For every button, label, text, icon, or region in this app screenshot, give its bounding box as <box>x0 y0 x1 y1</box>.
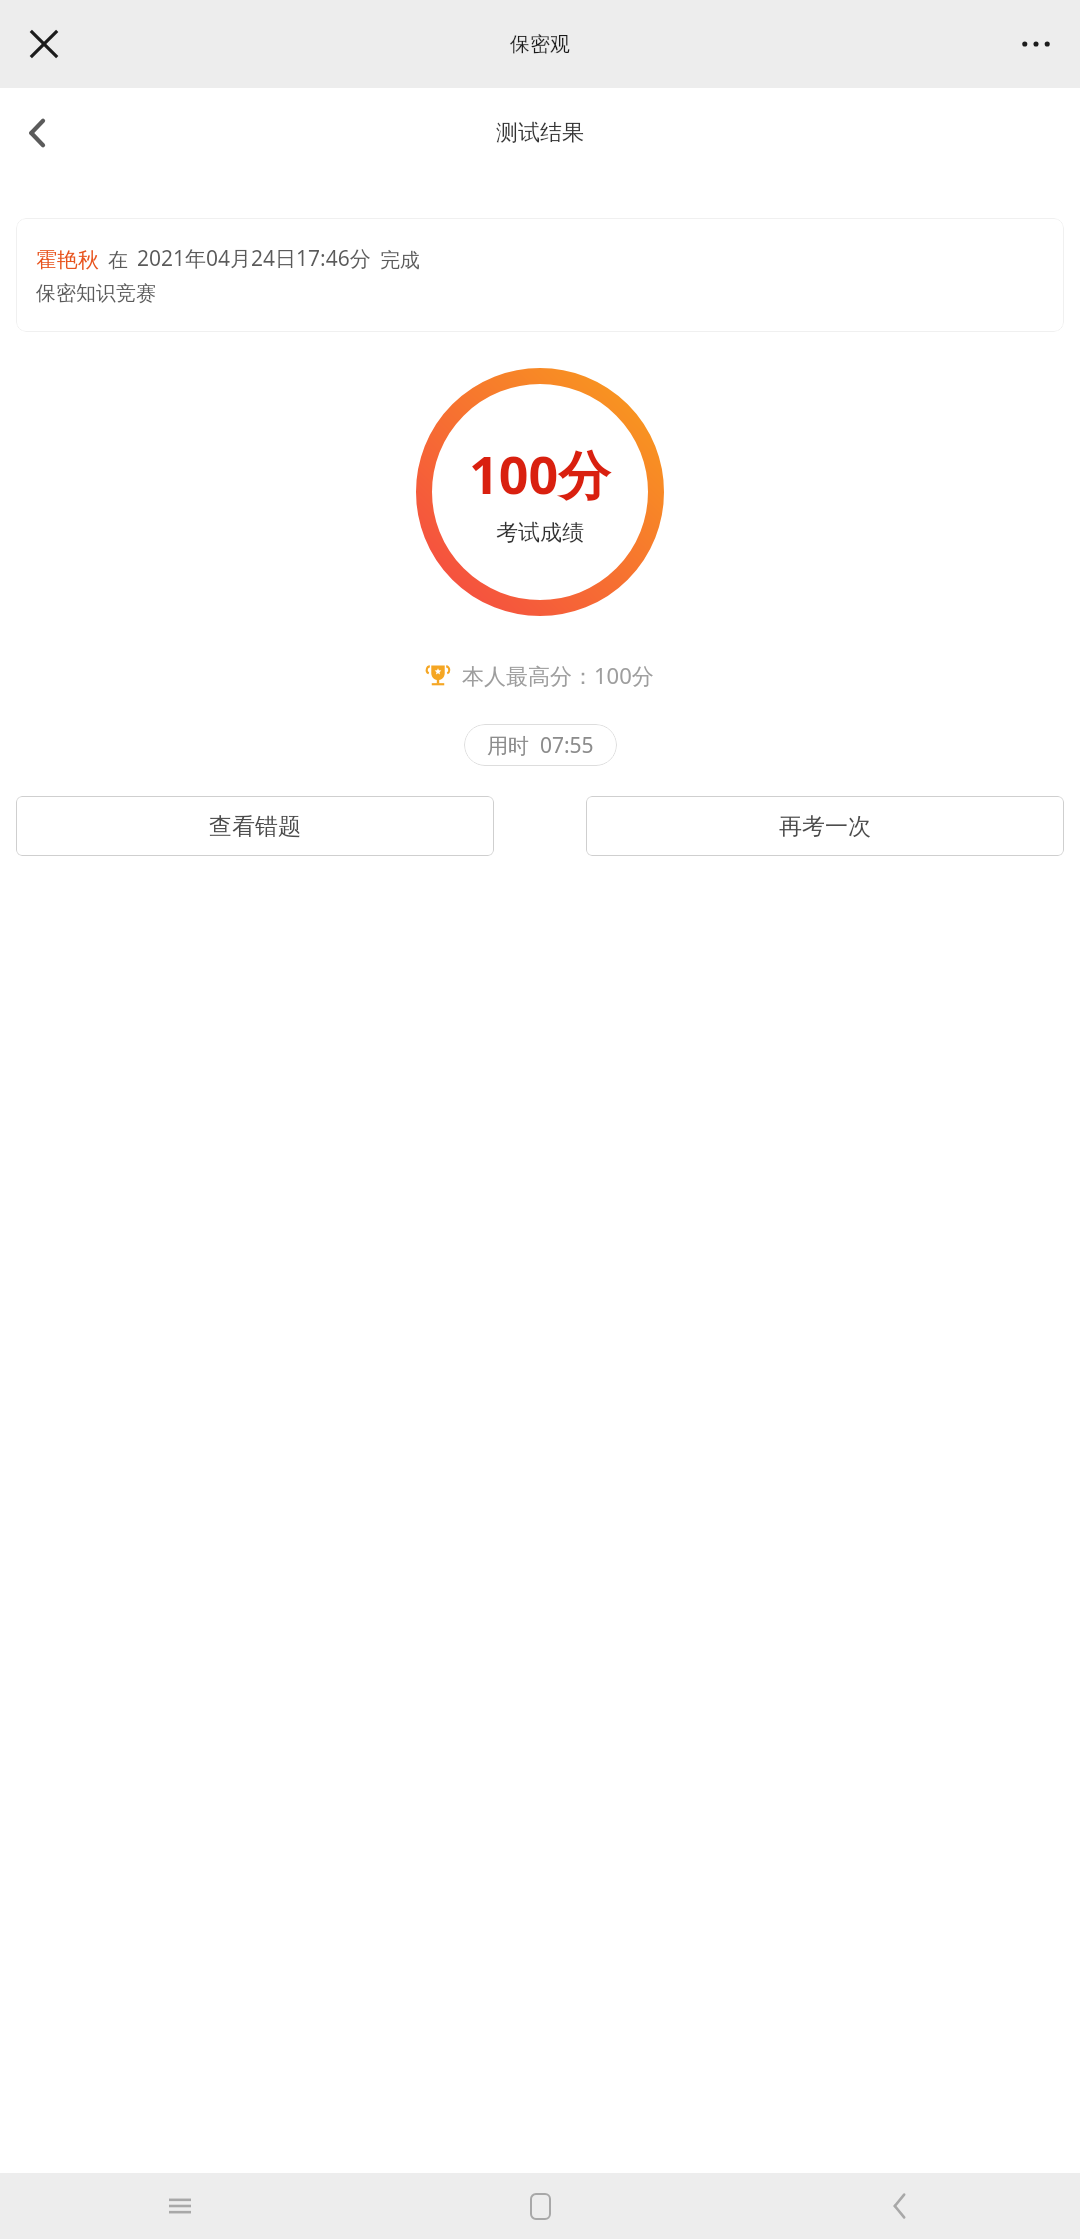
staticText: 测试结果 <box>496 119 584 147</box>
staticText: 保密观 <box>510 32 570 57</box>
staticText: 完成 <box>380 248 420 273</box>
button[interactable]: Back <box>720 2173 1080 2239</box>
staticText: 本人最高分：100分 <box>462 660 654 690</box>
button[interactable]: 查看错题 <box>16 796 494 856</box>
staticText: 考试成绩 <box>496 519 584 547</box>
button[interactable]: Recent apps <box>0 2173 360 2239</box>
button[interactable]: More options <box>1006 14 1066 74</box>
staticText: 再考一次 <box>779 812 871 841</box>
staticText: 保密知识竞赛 <box>36 281 156 306</box>
button[interactable]: 用时 07:55 <box>464 724 617 766</box>
button[interactable]: Close <box>14 14 74 74</box>
button[interactable]: 再考一次 <box>586 796 1064 856</box>
staticText: 2021年04月24日17:46分 <box>137 244 371 273</box>
staticText: 在 <box>108 248 128 273</box>
button[interactable]: 霍艳秋 <box>16 218 1064 332</box>
staticText: 查看错题 <box>209 812 301 841</box>
button[interactable]: Back <box>6 101 70 165</box>
button[interactable]: Home <box>360 2173 720 2239</box>
staticText: 100分 <box>469 438 611 509</box>
staticText: 用时 07:55 <box>487 731 594 760</box>
staticText: 霍艳秋 <box>36 247 99 273</box>
